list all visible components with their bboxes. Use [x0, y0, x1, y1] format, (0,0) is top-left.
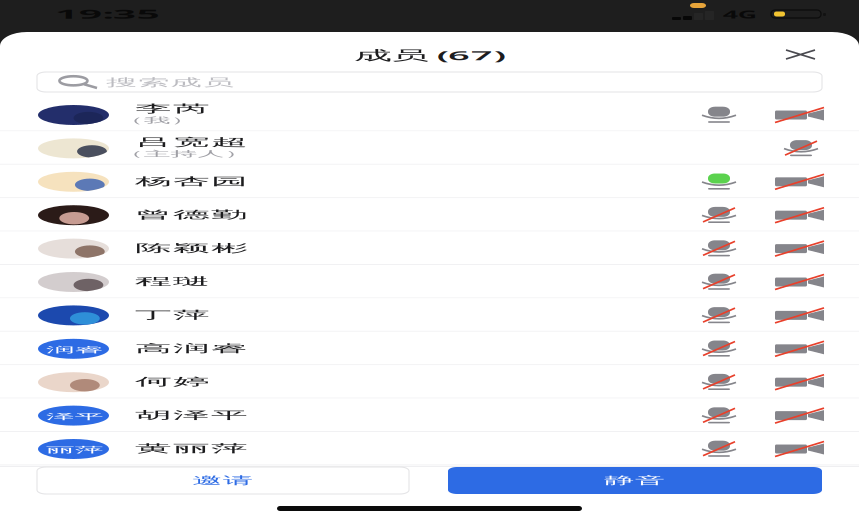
button[interactable]: 丁萍: [0, 298, 859, 332]
staticText: 何婷: [135, 375, 157, 388]
staticText: （主持人）: [117, 149, 157, 159]
staticText: 润睿: [46, 345, 62, 355]
button[interactable]: 杨杏园: [0, 165, 859, 198]
button[interactable]: 静音: [448, 467, 822, 494]
staticText: 19:35: [55, 6, 86, 22]
staticText: 黄丽萍: [135, 442, 168, 455]
button[interactable]: 搜索成员: [37, 72, 822, 92]
button[interactable]: 曾德勤: [0, 198, 859, 232]
button[interactable]: 吕宽超: [0, 131, 859, 165]
button[interactable]: 李芮: [0, 98, 859, 131]
staticText: 静音: [624, 474, 646, 487]
staticText: 陈颖彬: [135, 242, 168, 255]
staticText: （我）: [117, 115, 141, 125]
button[interactable]: 程琎: [0, 265, 859, 298]
staticText: 胡泽平: [135, 409, 168, 422]
staticText: 搜索成员: [106, 76, 150, 89]
button[interactable]: 丽萍: [0, 432, 859, 465]
staticText: 高润睿: [135, 342, 168, 355]
button[interactable]: 陈颖彬: [0, 232, 859, 265]
button[interactable]: 泽平: [0, 399, 859, 432]
button[interactable]: 邀请: [37, 467, 409, 494]
staticText: 成员 (67): [403, 46, 456, 64]
button[interactable]: 何婷: [0, 365, 859, 399]
staticText: 邀请: [212, 474, 234, 487]
staticText: 丁萍: [135, 308, 157, 321]
staticText: 曾德勤: [135, 208, 168, 221]
staticText: 程琎: [135, 275, 157, 288]
staticText: 4G: [720, 7, 734, 21]
staticText: 丽萍: [46, 445, 62, 455]
button[interactable]: 关闭: [775, 39, 826, 70]
staticText: 杨杏园: [135, 175, 168, 188]
button[interactable]: 润睿: [0, 332, 859, 365]
staticText: 泽平: [46, 412, 62, 421]
staticText: 吕宽超: [135, 136, 168, 149]
staticText: 李芮: [135, 102, 157, 115]
